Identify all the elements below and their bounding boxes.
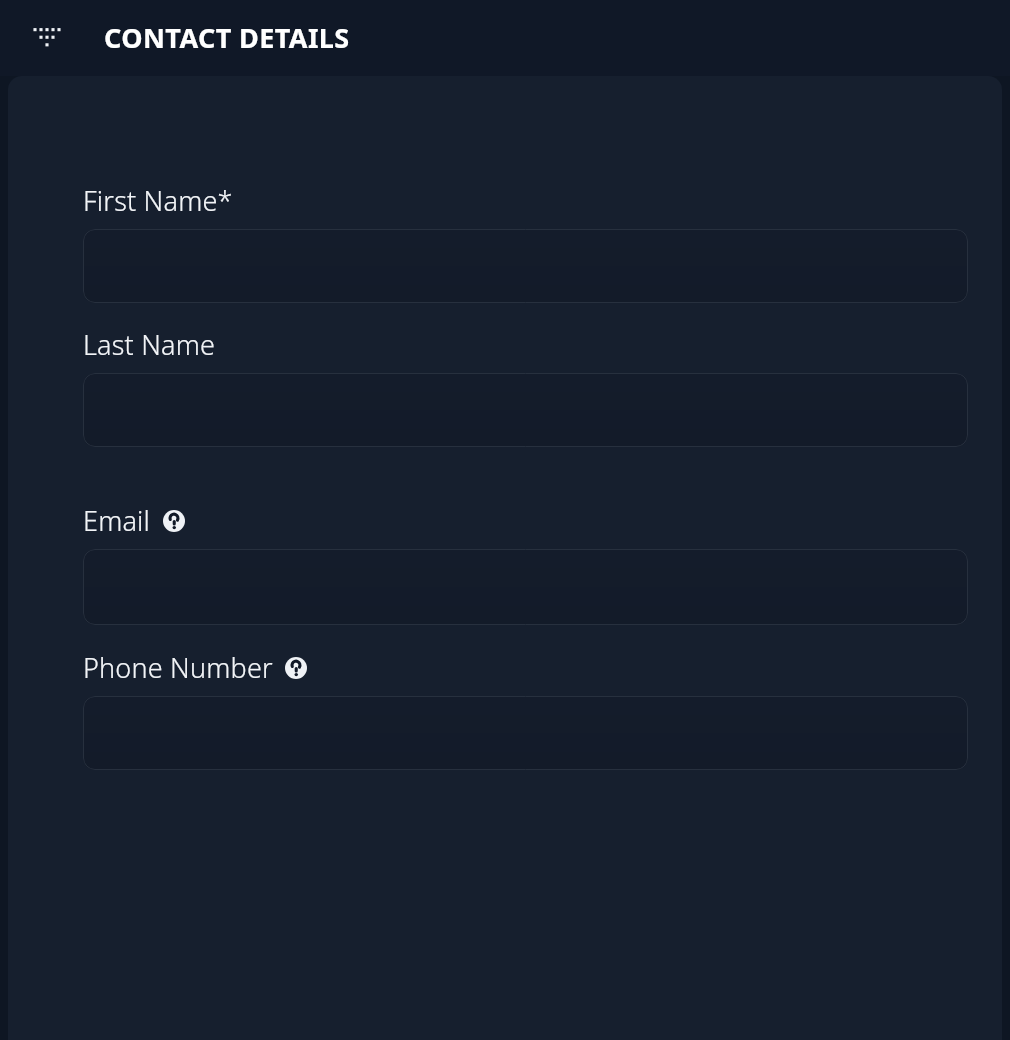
staticText: Email <box>83 502 151 539</box>
button[interactable]: Help about Phone Number <box>284 656 308 680</box>
button[interactable]: Menu <box>26 17 68 59</box>
button[interactable]: Help about Email <box>162 509 186 533</box>
button[interactable] <box>83 373 968 447</box>
staticText: CONTACT DETAILS <box>104 19 350 56</box>
button[interactable] <box>83 696 968 770</box>
staticText: First Name* <box>83 182 233 219</box>
staticText: Last Name <box>83 326 216 363</box>
button[interactable] <box>83 229 968 303</box>
staticText: Phone Number <box>83 649 273 686</box>
button[interactable] <box>83 549 968 625</box>
